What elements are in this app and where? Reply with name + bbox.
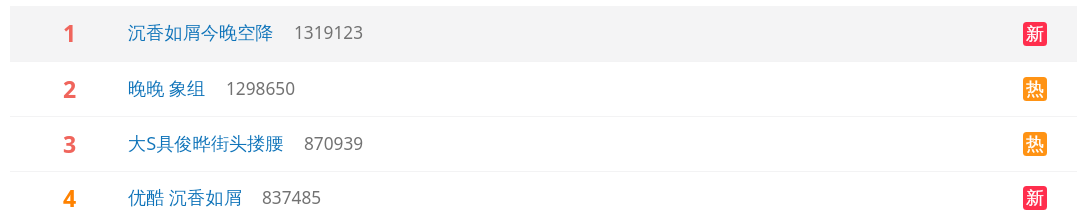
staticText: 1 [63, 17, 77, 48]
button[interactable]: 1 [0, 6, 1077, 61]
staticText: 优酷 沉香如屑 [128, 185, 242, 210]
button[interactable]: 3 [0, 117, 1077, 171]
staticText: 晚晚 象组 [128, 76, 206, 101]
staticText: 2 [63, 73, 77, 104]
staticText: 热 [1026, 133, 1044, 156]
staticText: 大S具俊晔街头搂腰 [128, 131, 284, 156]
staticText: 热 [1026, 78, 1044, 101]
button[interactable]: 4 [0, 172, 1077, 224]
staticText: 870939 [304, 132, 364, 155]
staticText: 4 [63, 182, 77, 213]
staticText: 新 [1026, 187, 1044, 210]
button[interactable]: 2 [0, 62, 1077, 116]
staticText: 沉香如屑今晚空降 [128, 21, 274, 44]
staticText: 1298650 [226, 77, 296, 100]
staticText: 新 [1026, 23, 1044, 46]
staticText: 1319123 [294, 21, 364, 44]
staticText: 837485 [262, 186, 322, 209]
staticText: 3 [63, 128, 77, 159]
